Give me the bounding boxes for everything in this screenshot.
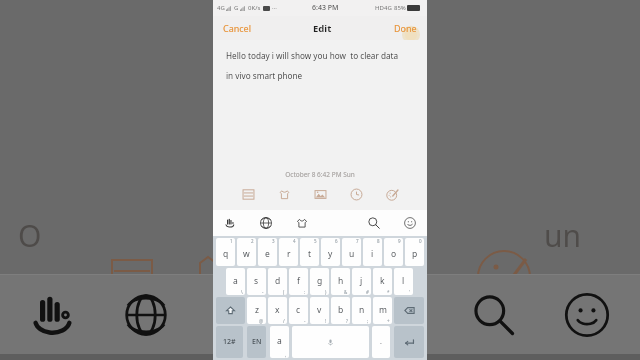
staticText: s: [254, 275, 259, 287]
staticText: f: [297, 275, 300, 287]
staticText: k: [380, 275, 385, 287]
button[interactable]: a: [270, 326, 289, 358]
staticText: 0: [419, 238, 422, 244]
button[interactable]: j: [352, 268, 371, 295]
staticText: October 8 6:42 PM Sun: [285, 170, 355, 179]
staticText: -: [262, 289, 264, 295]
button[interactable]: g: [310, 268, 329, 295]
staticText: r: [287, 248, 291, 260]
staticText: e: [265, 248, 270, 260]
staticText: p: [412, 248, 418, 260]
staticText: 85%: [394, 4, 406, 12]
staticText: h: [338, 275, 344, 287]
staticText: 8: [377, 238, 380, 244]
button[interactable]: Shift: [216, 297, 245, 324]
staticText: 2: [251, 238, 254, 244]
staticText: 3: [272, 238, 275, 244]
staticText: 9: [398, 238, 401, 244]
staticText: un: [544, 215, 582, 256]
staticText: o: [391, 248, 397, 260]
button[interactable]: 7: [342, 238, 361, 266]
button[interactable]: a: [226, 268, 245, 295]
staticText: b: [338, 304, 344, 316]
staticText: y: [328, 248, 333, 260]
button[interactable]: s: [247, 268, 266, 295]
button[interactable]: 3: [258, 238, 277, 266]
button[interactable]: Language: [247, 326, 266, 358]
staticText: (: [283, 289, 285, 295]
staticText: v: [317, 304, 322, 316]
staticText: !: [325, 318, 327, 324]
button[interactable]: d: [268, 268, 287, 295]
staticText: in vivo smart phone: [226, 70, 303, 81]
staticText: x: [275, 304, 280, 316]
button[interactable]: z: [247, 297, 266, 324]
staticText: z: [255, 304, 259, 316]
staticText: ?: [346, 318, 348, 324]
staticText: &: [344, 289, 348, 295]
button[interactable]: Language: [255, 212, 277, 234]
button[interactable]: k: [373, 268, 392, 295]
button[interactable]: 9: [384, 238, 403, 266]
staticText: j: [360, 275, 363, 287]
button[interactable]: List: [237, 183, 259, 205]
button[interactable]: 2: [237, 238, 256, 266]
staticText: 4G: [217, 4, 225, 12]
button[interactable]: x: [268, 297, 287, 324]
button[interactable]: Handwriting: [219, 212, 241, 234]
staticText: @: [259, 318, 264, 324]
staticText: Edit: [313, 22, 332, 35]
staticText: t: [308, 248, 312, 260]
button[interactable]: Draw: [381, 183, 403, 205]
button[interactable]: Search: [363, 212, 385, 234]
button[interactable]: c: [289, 297, 308, 324]
button[interactable]: h: [331, 268, 350, 295]
staticText: 6:43 PM: [312, 3, 339, 13]
staticText: Hello today i will show you how to clear…: [226, 50, 399, 61]
button[interactable]: l: [394, 268, 413, 295]
staticText: \: [241, 289, 243, 295]
button[interactable]: Enter: [394, 326, 424, 358]
button[interactable]: Template: [273, 183, 295, 205]
staticText: ,: [285, 352, 287, 358]
button[interactable]: 5: [300, 238, 319, 266]
staticText: +: [387, 318, 390, 324]
button[interactable]: v: [310, 297, 329, 324]
staticText: #: [366, 289, 369, 295]
button[interactable]: 8: [363, 238, 382, 266]
button[interactable]: Emoji: [399, 212, 421, 234]
staticText: m: [379, 304, 387, 316]
button[interactable]: Done: [384, 18, 427, 38]
button[interactable]: 1: [216, 238, 235, 266]
button[interactable]: Backspace: [394, 297, 424, 324]
staticText: ;: [367, 318, 369, 324]
staticText: a: [277, 335, 282, 347]
button[interactable]: Space: [292, 326, 369, 358]
staticText: :: [304, 289, 306, 295]
button[interactable]: Cancel: [213, 18, 262, 38]
staticText: 6: [335, 238, 338, 244]
staticText: O: [18, 215, 42, 256]
button[interactable]: m: [373, 297, 392, 324]
button[interactable]: Insert image: [309, 183, 331, 205]
button[interactable]: 0: [405, 238, 424, 266]
staticText: i: [371, 248, 374, 260]
staticText: 4G: [384, 4, 392, 12]
staticText: -: [304, 318, 306, 324]
button[interactable]: 6: [321, 238, 340, 266]
staticText: 1: [230, 238, 233, 244]
button[interactable]: f: [289, 268, 308, 295]
staticText: n: [359, 304, 365, 316]
staticText: ···: [272, 4, 277, 12]
button[interactable]: Theme: [291, 212, 313, 234]
staticText: 5: [314, 238, 317, 244]
button[interactable]: Symbols: [216, 326, 243, 358]
button[interactable]: b: [331, 297, 350, 324]
button[interactable]: .: [372, 326, 390, 358]
button[interactable]: Reminder: [345, 183, 367, 205]
staticText: G: [234, 4, 239, 12]
button[interactable]: 4: [279, 238, 298, 266]
staticText: 12#: [223, 337, 236, 347]
button[interactable]: n: [352, 297, 371, 324]
staticText: u: [349, 248, 355, 260]
